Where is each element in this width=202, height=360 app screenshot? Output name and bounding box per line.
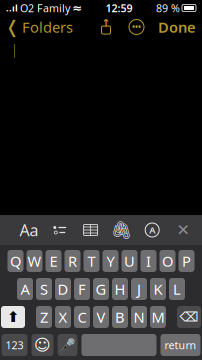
button[interactable]: G — [93, 278, 109, 300]
staticText: ••• — [132, 22, 141, 32]
staticText: H — [114, 279, 125, 299]
button[interactable]: Shift — [1, 306, 25, 328]
staticText: Done — [158, 17, 196, 37]
staticText: return — [164, 338, 196, 352]
button[interactable]: Share — [99, 16, 113, 38]
staticText: F — [78, 279, 86, 299]
staticText: ⬆ — [7, 309, 19, 325]
staticText: I — [146, 251, 151, 271]
button[interactable]: F — [74, 278, 90, 300]
staticText: A — [20, 279, 29, 299]
button[interactable]: 123 — [1, 334, 27, 356]
button[interactable]: C — [74, 306, 90, 328]
button[interactable]: Checklist — [49, 218, 71, 242]
button[interactable]: N — [131, 306, 147, 328]
button[interactable]: L — [169, 278, 185, 300]
button[interactable]: V — [93, 306, 109, 328]
button[interactable]: Q — [7, 250, 23, 272]
staticText: C — [77, 307, 86, 327]
staticText: ❬ — [5, 17, 20, 37]
staticText: 89 % — [156, 1, 180, 15]
staticText: G — [95, 279, 106, 299]
staticText: ..ıl — [6, 2, 18, 14]
button[interactable]: return — [160, 334, 200, 356]
button[interactable]: R — [64, 250, 80, 272]
staticText: W — [27, 251, 41, 271]
button[interactable]: Table — [80, 218, 102, 242]
staticText: L — [173, 279, 181, 299]
staticText: K — [153, 279, 162, 299]
staticText: S — [40, 279, 48, 299]
staticText: O — [162, 251, 173, 271]
button[interactable]: J — [131, 278, 147, 300]
button[interactable]: E — [45, 250, 61, 272]
button[interactable]: More — [129, 19, 144, 34]
staticText: ✕ — [176, 221, 189, 239]
staticText: D — [57, 279, 68, 299]
staticText: Aa — [19, 219, 38, 241]
staticText: ≈ — [72, 1, 82, 15]
staticText: ⌫ — [179, 309, 198, 324]
staticText: M — [151, 307, 164, 327]
button[interactable]: Dictate — [57, 334, 77, 356]
button[interactable]: K — [150, 278, 166, 300]
staticText: 123 — [5, 338, 23, 352]
staticText: B — [115, 307, 125, 327]
staticText: J — [137, 279, 141, 299]
staticText: V — [96, 307, 105, 327]
button[interactable]: A — [17, 278, 33, 300]
staticText: P — [182, 251, 191, 271]
button[interactable]: Emoji — [31, 334, 53, 356]
staticText: E — [49, 251, 57, 271]
button[interactable]: I — [140, 250, 156, 272]
button[interactable]: U — [121, 250, 137, 272]
staticText: ↑ — [101, 17, 110, 29]
button[interactable]: Delete — [177, 306, 201, 328]
button[interactable]: Attach — [110, 218, 132, 242]
staticText: Z — [40, 307, 48, 327]
button[interactable]: Z — [36, 306, 52, 328]
staticText: 12:59 — [105, 1, 132, 15]
button[interactable]: B — [112, 306, 128, 328]
button[interactable]: Text format — [18, 218, 40, 242]
button[interactable]: D — [55, 278, 71, 300]
button[interactable]: Markup — [141, 218, 163, 242]
staticText: Y — [106, 251, 114, 271]
button[interactable]: O — [159, 250, 175, 272]
staticText: A — [149, 224, 155, 236]
staticText: N — [133, 307, 144, 327]
staticText: 🖇 — [110, 220, 132, 240]
staticText: R — [68, 251, 77, 271]
button[interactable]: S — [36, 278, 52, 300]
button[interactable]: ❬ — [0, 13, 73, 41]
staticText: U — [124, 251, 135, 271]
staticText: ☺ — [34, 336, 51, 354]
staticText: Q — [10, 251, 21, 271]
staticText: 🎤 — [59, 337, 76, 353]
button[interactable]: H — [112, 278, 128, 300]
staticText: O2 Family — [20, 1, 70, 15]
button[interactable]: T — [83, 250, 99, 272]
button[interactable]: M — [150, 306, 166, 328]
button[interactable]: Y — [102, 250, 118, 272]
staticText: T — [87, 251, 95, 271]
staticText: X — [58, 307, 67, 327]
staticText: Folders — [22, 17, 73, 37]
button[interactable]: X — [55, 306, 71, 328]
button[interactable]: W — [26, 250, 42, 272]
button[interactable]: Done — [158, 13, 202, 41]
button[interactable]: P — [178, 250, 194, 272]
button[interactable]: Close keyboard — [172, 218, 194, 242]
